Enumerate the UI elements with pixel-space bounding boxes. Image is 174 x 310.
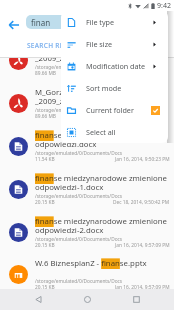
button[interactable]: finanse miedzynarodowe zmienione — [0, 211, 174, 254]
staticText: /storage/emulated/0/Download — [35, 107, 107, 114]
staticText: 20.15 KB — [35, 284, 55, 289]
button[interactable]: SEARCH RESULTS — [14, 44, 174, 53]
staticText: _2009_zarzadzanie_finansami.pdf — [35, 58, 158, 64]
staticText: W.6 BiznesplanZ - finanse.pptx — [35, 258, 147, 269]
button[interactable]: File size — [61, 33, 168, 55]
button[interactable]: W.6 BiznesplanZ - finanse.pptx — [0, 254, 174, 289]
button[interactable]: finanse miedzynarodowe zmienione — [0, 125, 174, 168]
staticText: odpowiedzi-2.docx — [35, 225, 104, 236]
staticText: 89.66 MB — [35, 113, 56, 120]
staticText: odpowiedzi-1.docx — [35, 182, 104, 193]
staticText: Select all — [86, 127, 116, 137]
button[interactable]: File type — [61, 11, 168, 33]
button[interactable]: Modification date — [61, 55, 168, 77]
staticText: /storage/emulated/0/Download — [35, 64, 107, 71]
button[interactable]: Back — [26, 289, 50, 310]
button[interactable]: Home — [75, 289, 99, 310]
button[interactable]: finanse miedzynarodowe zmienione — [0, 168, 174, 211]
button[interactable]: Recent apps — [124, 289, 148, 310]
staticText: /storage/emulated/0/Documents/Docs — [35, 193, 123, 200]
button[interactable]: Sort mode — [61, 77, 168, 99]
staticText: File size — [86, 39, 113, 49]
staticText: finan — [31, 17, 51, 28]
button[interactable]: Back — [4, 15, 23, 34]
staticText: finanse miedzynarodowe zmienione — [35, 216, 168, 227]
button[interactable]: Current folder — [61, 99, 168, 121]
staticText: 9:42 — [157, 1, 171, 11]
staticText: /storage/emulated/0/Documents/Docs — [35, 236, 123, 243]
button[interactable]: M_Gorzelanczyk — [0, 82, 174, 125]
staticText: /storage/emulated/0/Documents/Docs — [35, 278, 123, 285]
staticText: Jan 16, 2014, 9:50:23 PM — [115, 156, 170, 163]
staticText: Sort mode — [86, 83, 122, 93]
staticText: 20.15 KB — [35, 242, 55, 249]
staticText: Jan 16, 2014, 9:57:09 PM — [115, 284, 170, 289]
button[interactable]: Select all — [61, 121, 168, 143]
staticText: File type — [86, 17, 115, 27]
staticText: odpowiedzi.docx — [35, 139, 97, 150]
staticText: Jan 16, 2014, 9:57:09 PM — [115, 242, 170, 249]
staticText: /storage/emulated/0/Documents/Docs — [35, 150, 123, 157]
staticText: Dec 18, 2014, 9:50:42 PM — [113, 199, 170, 206]
staticText: 20.15 KB — [35, 199, 55, 206]
staticText: M_Gorzelanczyk — [35, 87, 94, 98]
button[interactable]: M_Gorzelanczyk — [0, 58, 174, 82]
staticText: finanse miedzynarodowe zmienione — [35, 130, 168, 141]
button[interactable]: finan — [26, 15, 118, 29]
staticText: Modification date — [86, 61, 146, 71]
staticText: _2009_zarzadzanie_finansami.pdf — [35, 96, 158, 107]
staticText: Current folder — [86, 105, 134, 115]
staticText: 11.54 KB — [35, 156, 55, 163]
staticText: SEARCH RESULTS — [27, 41, 85, 50]
staticText: 89.66 MB — [35, 70, 56, 77]
staticText: finanse miedzynarodowe zmienione — [35, 173, 168, 184]
